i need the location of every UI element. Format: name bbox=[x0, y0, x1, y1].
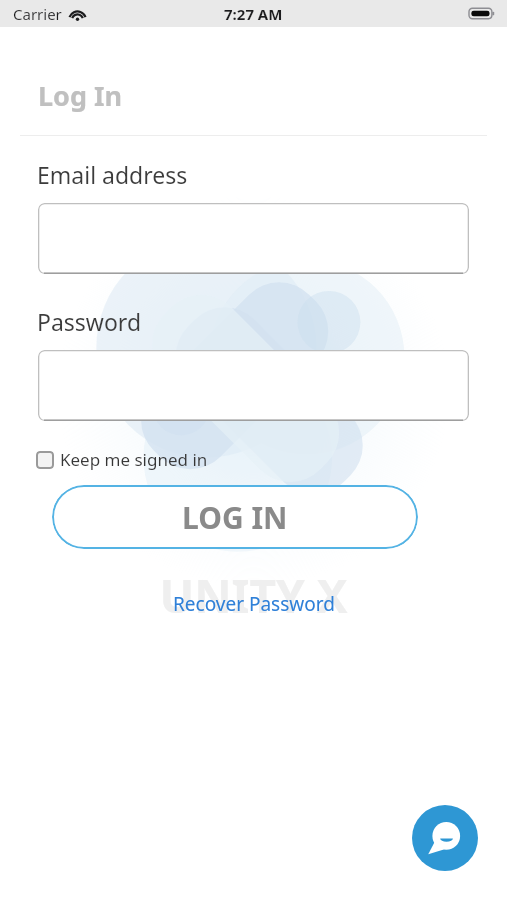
staticText: Email address bbox=[37, 159, 188, 190]
button[interactable]: Open chat support bbox=[412, 805, 478, 871]
staticText: Recover Password bbox=[173, 591, 335, 617]
button[interactable] bbox=[38, 203, 469, 274]
staticText: Keep me signed in bbox=[60, 448, 208, 471]
staticText: Log In bbox=[38, 77, 123, 114]
staticText: Password bbox=[37, 306, 142, 337]
staticText: UNITY X bbox=[159, 564, 348, 627]
button[interactable]: LOG IN bbox=[52, 485, 418, 549]
staticText: LOG IN bbox=[182, 497, 288, 538]
button[interactable] bbox=[38, 350, 469, 421]
staticText: 7:27 AM bbox=[224, 4, 283, 24]
button[interactable]: Recover Password bbox=[163, 587, 345, 621]
staticText: Carrier bbox=[13, 4, 62, 24]
button[interactable]: Keep me signed in bbox=[36, 446, 216, 473]
